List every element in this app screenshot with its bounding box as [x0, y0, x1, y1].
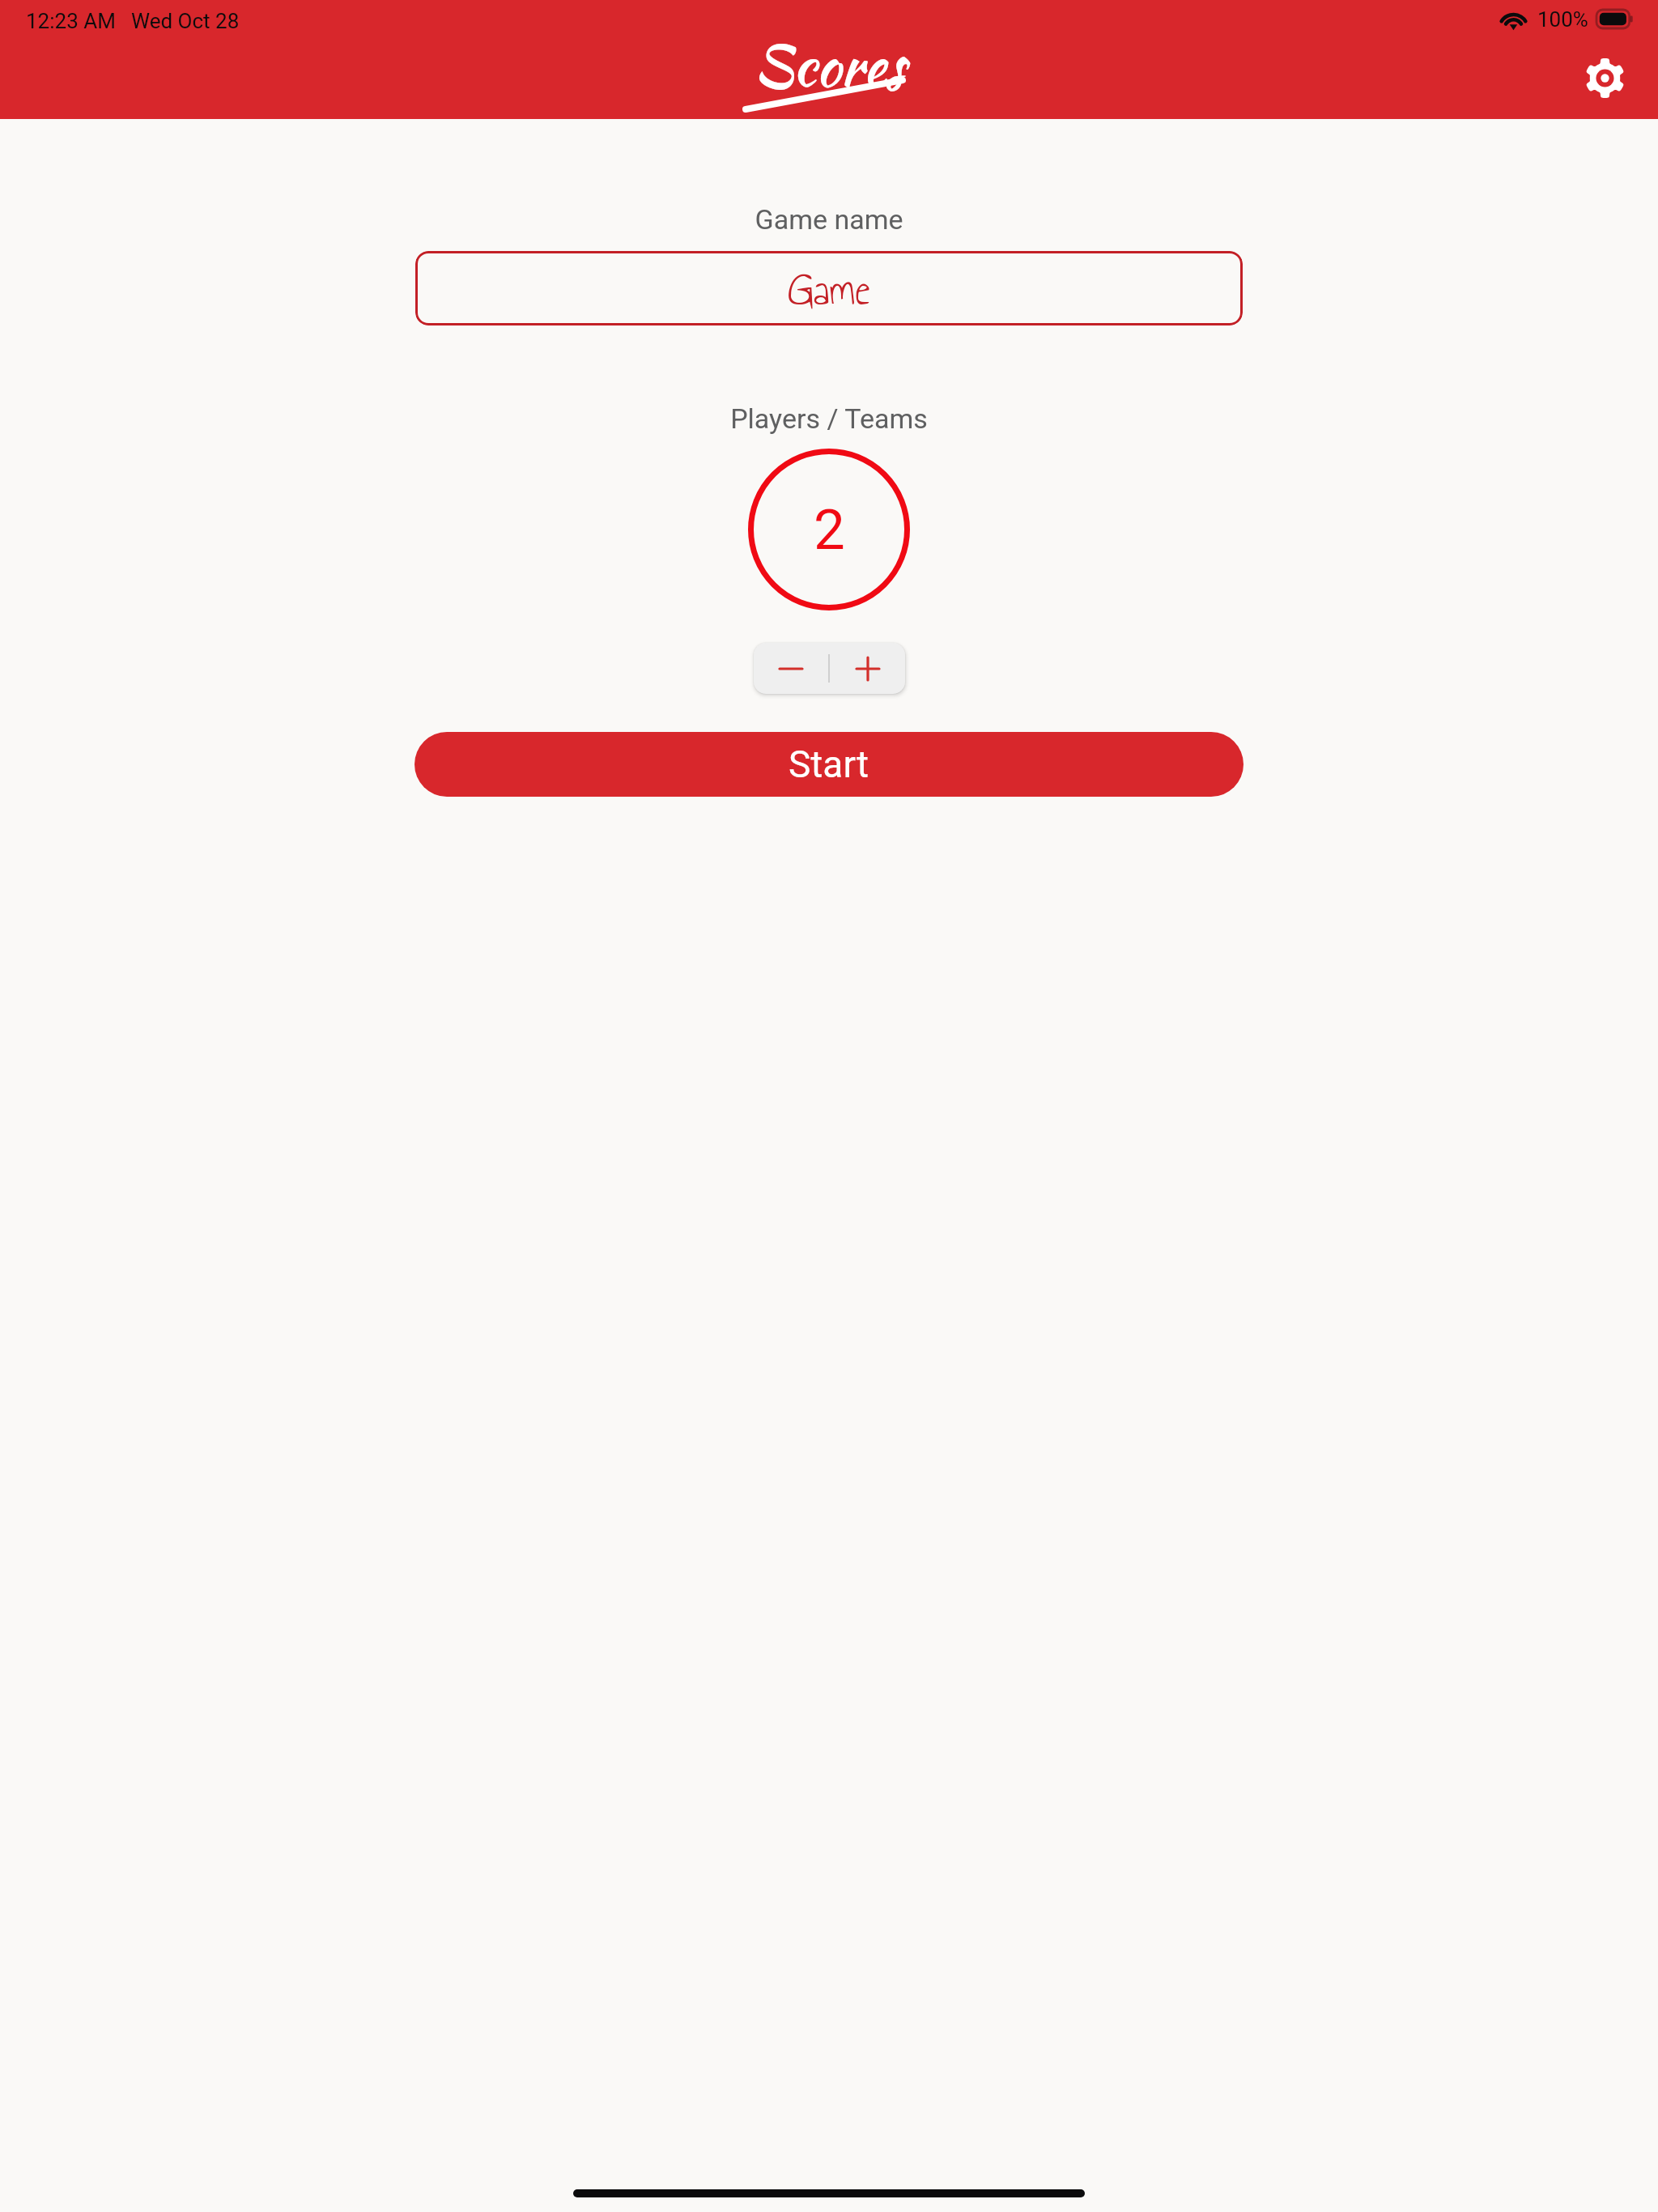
staticText: 2 — [814, 497, 845, 563]
button[interactable]: 2 — [748, 449, 910, 610]
staticText: 100% — [1537, 7, 1588, 32]
staticText: Game — [788, 257, 871, 324]
button[interactable]: Start — [414, 732, 1243, 797]
button[interactable]: Increase players — [830, 643, 905, 694]
staticText: Wed Oct 28 — [131, 9, 240, 33]
staticText: Game name — [0, 203, 1658, 236]
staticText: Players / Teams — [0, 402, 1658, 435]
staticText: 12:23 AM — [26, 9, 116, 33]
button[interactable]: Settings — [1566, 39, 1643, 117]
button[interactable]: Decrease players — [754, 643, 828, 694]
staticText: Start — [789, 742, 869, 786]
button[interactable]: Game — [415, 251, 1243, 325]
staticText: Scores — [754, 25, 905, 106]
